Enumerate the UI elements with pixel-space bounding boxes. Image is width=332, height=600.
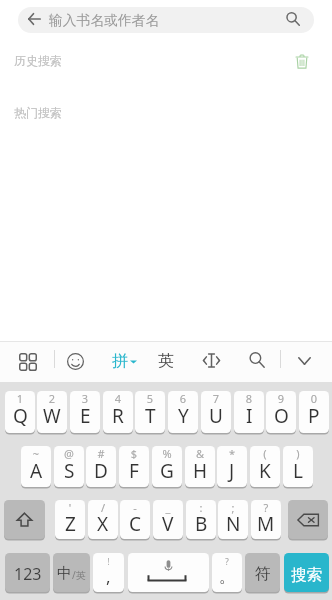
staticText: 5 [135,391,165,406]
staticText: O [274,403,289,429]
staticText: 8 [234,391,264,406]
button[interactable]: ? [212,553,242,592]
button[interactable]: 3 [70,391,100,433]
button[interactable]: Shift [4,500,45,539]
button[interactable]: / [88,500,118,539]
staticText: A [30,458,43,484]
staticText: 9 [266,391,296,406]
staticText: : [186,500,216,515]
staticText: 3 [70,391,100,406]
button[interactable]: ! [93,553,124,592]
staticText: 2 [37,391,67,406]
staticText: W [43,403,61,429]
staticText: 符 [255,564,271,584]
staticText: R [112,403,124,429]
button[interactable]: Search [283,9,303,29]
staticText: X [97,511,109,537]
button[interactable]: 8 [234,391,264,433]
button[interactable]: Clear search history [292,51,312,71]
button[interactable]: Keyboard layouts [18,352,37,371]
staticText: 中 [57,564,72,583]
button[interactable]: 4 [103,391,133,433]
staticText: * [217,446,247,461]
button[interactable]: ) [283,446,313,487]
staticText: U [209,403,223,429]
button[interactable]: 符 [245,553,280,592]
button[interactable]: & [185,446,215,487]
button[interactable]: _ [153,500,183,539]
staticText: # [86,446,116,461]
button[interactable]: : [186,500,216,539]
staticText: ) [283,446,313,461]
staticText: I [246,403,253,429]
button[interactable]: 热门搜索 [0,99,332,125]
staticText: P [308,403,320,429]
staticText: S [64,458,75,484]
staticText: $ [119,446,149,461]
button[interactable]: Emoji [67,353,84,370]
staticText: 历史搜索 [14,53,62,68]
staticText: ~ [21,446,51,461]
staticText: % [152,446,182,461]
button[interactable]: Backspace [288,500,328,539]
button[interactable]: 2 [37,391,67,433]
staticText: 。 [219,566,236,587]
button[interactable]: 6 [168,391,198,433]
button[interactable]: ~ [21,446,51,487]
button[interactable]: ( [250,446,280,487]
staticText: ( [250,446,280,461]
staticText: & [185,446,215,461]
staticText: /英 [72,568,86,582]
button[interactable]: * [217,446,247,487]
staticText: 4 [103,391,133,406]
button[interactable]: 9 [266,391,296,433]
staticText: 0 [299,391,329,406]
button[interactable]: Search [249,352,265,368]
button[interactable]: 0 [299,391,329,433]
button[interactable]: 5 [135,391,165,433]
staticText: 7 [201,391,231,406]
button[interactable]: 中 [53,553,90,592]
button[interactable]: % [152,446,182,487]
button[interactable]: Hide keyboard [298,357,311,365]
button[interactable]: Back [18,7,314,33]
staticText: ; [218,500,248,515]
staticText: ! [93,556,124,567]
staticText: F [129,458,139,484]
staticText: 1 [5,391,35,406]
staticText: 搜索 [291,565,322,585]
button[interactable]: ? [251,500,281,539]
button[interactable]: 历史搜索 [0,46,332,74]
button[interactable]: 搜索 [284,553,329,592]
button[interactable]: $ [119,446,149,487]
button[interactable]: 123 [5,553,50,592]
staticText: 英 [158,351,174,371]
staticText: - [120,500,150,515]
staticText: ' [55,500,85,515]
staticText: @ [54,446,84,461]
button[interactable]: @ [54,446,84,487]
staticText: Z [65,511,76,537]
button[interactable]: 拼 [112,350,137,372]
staticText: ? [251,500,281,515]
button[interactable]: 英 [158,350,174,372]
button[interactable]: # [86,446,116,487]
button[interactable]: ; [218,500,248,539]
staticText: K [259,458,271,484]
staticText: , [106,565,111,588]
staticText: L [293,458,303,484]
button[interactable]: 1 [5,391,35,433]
button[interactable]: Space [128,553,209,592]
staticText: E [80,403,91,429]
staticText: C [129,511,142,537]
staticText: Y [178,403,189,429]
button[interactable]: ' [55,500,85,539]
staticText: 输入书名或作者名 [49,12,160,29]
button[interactable]: - [120,500,150,539]
staticText: / [88,500,118,515]
button[interactable]: 7 [201,391,231,433]
staticText: 拼 [112,351,128,371]
staticText: _ [153,500,183,515]
button[interactable]: Back [24,9,44,29]
button[interactable]: Move cursor [203,353,220,368]
